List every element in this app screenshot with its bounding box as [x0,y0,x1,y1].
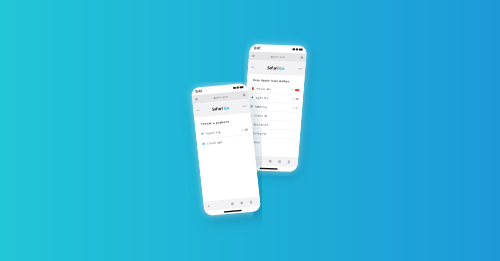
staticText: apple.com [271,54,285,57]
button[interactable]: Credit card [191,140,247,150]
staticText: Choose a payment [197,123,225,126]
staticText: Bulk price [260,131,274,135]
button[interactable]: Matching [250,102,307,110]
staticText: Credit card [201,143,216,147]
staticText: Safari [269,64,280,70]
staticText: Video ad [260,113,273,117]
staticText: apple.com [212,98,226,101]
button[interactable]: Toolbar item [297,159,299,162]
staticText: Safari [210,108,221,114]
button[interactable]: Toolbar item [278,159,281,162]
button[interactable]: Video ad [250,111,307,119]
button[interactable]: Share [194,98,196,101]
staticText: Light fee [260,95,273,99]
staticText: 9:41 [195,89,202,94]
button[interactable]: Light fee [250,93,307,101]
staticText: Other [260,140,268,143]
button[interactable]: Reload [242,98,244,101]
staticText: Go [281,64,287,70]
button[interactable]: Toolbar item [287,159,290,162]
staticText: 9:41 [254,45,261,50]
button[interactable]: Share [253,54,255,57]
button[interactable]: Sponsored [250,120,307,128]
button[interactable]: Apple Pay [191,129,247,139]
button[interactable]: Photo ads [250,84,307,93]
staticText: Apple Pay [201,133,215,136]
staticText: Photo ads [260,87,274,90]
staticText: Go [221,108,227,114]
staticText: Matching [260,104,272,108]
button[interactable]: Bulk price [250,128,307,137]
staticText: Rate Apple local services [256,78,292,81]
button[interactable]: Toolbar item [237,206,239,209]
button[interactable]: Other [250,137,307,146]
button[interactable]: Reload [302,54,304,57]
staticText: Sponsored [260,122,275,126]
